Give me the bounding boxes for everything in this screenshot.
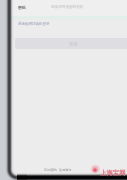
staticText: 上海宝网 — [100, 169, 126, 177]
button[interactable]: 密码 — [11, 0, 127, 16]
staticText: 系统检测到该机登录 — [18, 22, 50, 26]
staticText: 注册账号 — [59, 168, 72, 172]
staticText: 密码 — [18, 5, 26, 10]
staticText: 请填写网页密码资料 — [51, 5, 84, 10]
button[interactable]: 忘记密码 — [44, 168, 57, 172]
staticText: 登录 — [69, 41, 78, 46]
button[interactable]: 注册账号 — [59, 168, 72, 172]
staticText: 忘记密码 — [44, 168, 57, 172]
other: Watermark — [100, 169, 126, 177]
